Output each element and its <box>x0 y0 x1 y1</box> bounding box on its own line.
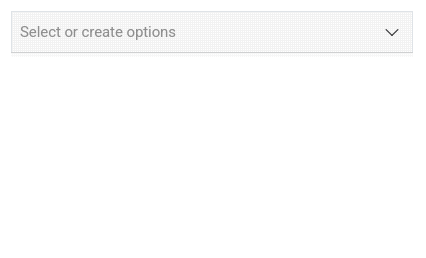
staticText: Select or create options <box>20 23 176 41</box>
other: Expand <box>385 25 399 39</box>
button[interactable]: Select or create options <box>11 11 413 53</box>
